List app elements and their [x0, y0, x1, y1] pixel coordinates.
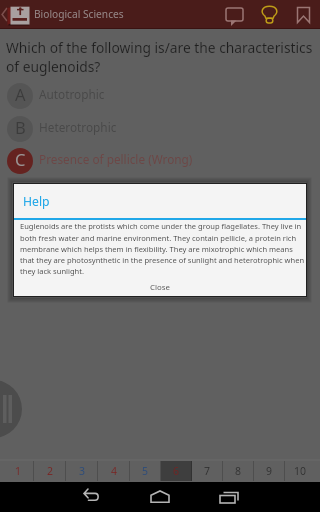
button[interactable]: Hint [255, 1, 284, 28]
staticText: 5 [142, 464, 149, 478]
button[interactable]: 5 [130, 461, 161, 481]
staticText: Help [23, 193, 50, 210]
button[interactable]: 7 [192, 461, 223, 481]
button[interactable]: 3 [66, 461, 98, 481]
staticText: C [15, 148, 26, 170]
button[interactable]: B [7, 116, 317, 142]
button[interactable]: 9 [254, 461, 285, 481]
staticText: 9 [266, 464, 273, 478]
button[interactable]: A [7, 83, 317, 109]
button[interactable]: Comments [220, 1, 249, 28]
button[interactable]: Bookmark [289, 1, 318, 28]
button[interactable]: Home [144, 482, 176, 512]
button[interactable]: Back [66, 482, 118, 512]
button[interactable]: 10 [285, 461, 316, 481]
staticText: 2 [47, 464, 54, 478]
staticText: 4 [111, 464, 118, 478]
staticText: Presence of pellicle (Wrong) [39, 151, 193, 167]
button[interactable]: 2 [34, 461, 66, 481]
staticText: Biological Sciences [34, 7, 124, 21]
staticText: Autotrophic [39, 86, 105, 102]
button[interactable]: Recent apps [212, 482, 244, 512]
staticText: Which of the following is/are the charac… [6, 38, 316, 76]
button[interactable]: Close [14, 278, 306, 296]
staticText: Heterotrophic [39, 119, 117, 135]
staticText: 7 [204, 464, 211, 478]
staticText: 1 [15, 464, 22, 478]
staticText: B [15, 116, 26, 138]
staticText: 6 [173, 464, 180, 478]
staticText: Close [150, 282, 171, 293]
button[interactable]: 6 [161, 461, 192, 481]
button[interactable]: C [7, 148, 317, 174]
button[interactable]: 4 [98, 461, 130, 481]
staticText: Euglenoids are the protists which come u… [20, 221, 306, 276]
button[interactable]: 8 [223, 461, 254, 481]
staticText: 10 [294, 464, 307, 478]
staticText: A [15, 83, 26, 105]
staticText: 3 [79, 464, 86, 478]
button[interactable]: 1 [2, 461, 34, 481]
button[interactable]: Pause [0, 380, 22, 438]
staticText: 8 [235, 464, 242, 478]
